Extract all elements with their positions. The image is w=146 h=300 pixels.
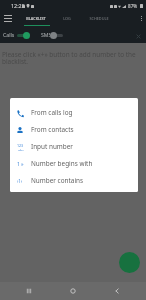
staticText: Calls	[3, 31, 15, 38]
button[interactable]: LOG	[51, 11, 83, 26]
staticText: From contacts	[31, 125, 74, 134]
staticText: 12:25	[11, 2, 25, 9]
button[interactable]: More options	[136, 11, 146, 26]
button[interactable]: Home	[58, 282, 88, 300]
staticText: From calls log	[31, 108, 73, 117]
staticText: ›1›	[17, 178, 23, 184]
staticText: Number contains	[31, 176, 84, 185]
staticText: LOG	[63, 16, 71, 21]
button[interactable]: From calls log	[10, 104, 138, 121]
staticText: Input number	[31, 142, 74, 151]
staticText: SMS	[41, 31, 50, 38]
staticText: 87%	[128, 3, 138, 9]
button[interactable]: Clear all	[134, 32, 143, 41]
button[interactable]: Open navigation menu	[2, 13, 13, 24]
staticText: SCHEDULE	[89, 16, 109, 21]
staticText: 1	[17, 161, 20, 168]
button[interactable]: 123	[10, 138, 138, 155]
button[interactable]: From contacts	[10, 121, 138, 138]
button[interactable]	[50, 29, 64, 41]
staticText: »	[21, 161, 24, 168]
button[interactable]: Calls	[3, 26, 17, 43]
staticText: abc	[18, 148, 24, 151]
staticText: BLACKLIST	[26, 16, 46, 21]
staticText: Number begins with	[31, 159, 93, 168]
button[interactable]: SCHEDULE	[83, 11, 115, 26]
button[interactable]: BLACKLIST	[20, 11, 52, 26]
button[interactable]: Recent apps	[14, 282, 44, 300]
button[interactable]: Back	[102, 282, 132, 300]
staticText: Please click «+» button to add number to…	[2, 50, 143, 66]
button[interactable]: SMS	[41, 26, 50, 43]
staticText: 123	[17, 143, 24, 148]
button[interactable]	[16, 29, 30, 41]
button[interactable]: ›1›	[10, 172, 138, 189]
button[interactable]: 1	[10, 155, 138, 172]
button[interactable]: Add number	[119, 252, 140, 273]
